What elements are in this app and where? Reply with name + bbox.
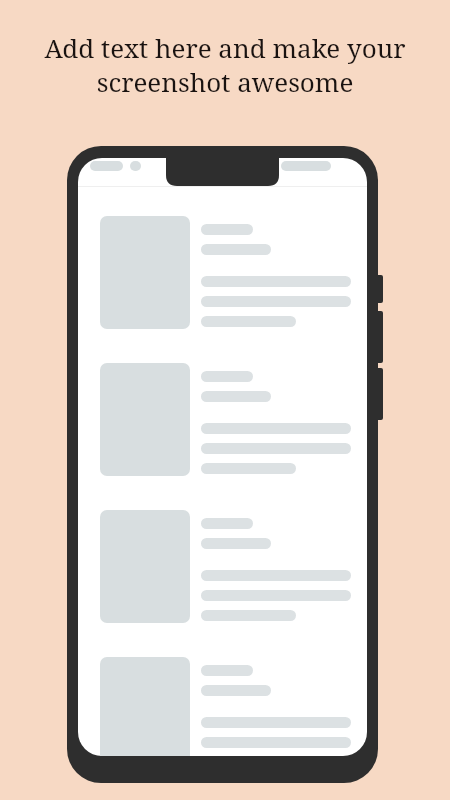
other: Volume down [374, 368, 383, 420]
other: Volume up [374, 311, 383, 363]
staticText: Add text here and make your screenshot a… [25, 30, 425, 100]
button[interactable] [100, 210, 367, 357]
other: Power button [374, 275, 383, 303]
button[interactable] [100, 504, 367, 651]
button[interactable] [100, 357, 367, 504]
button[interactable] [100, 651, 367, 756]
